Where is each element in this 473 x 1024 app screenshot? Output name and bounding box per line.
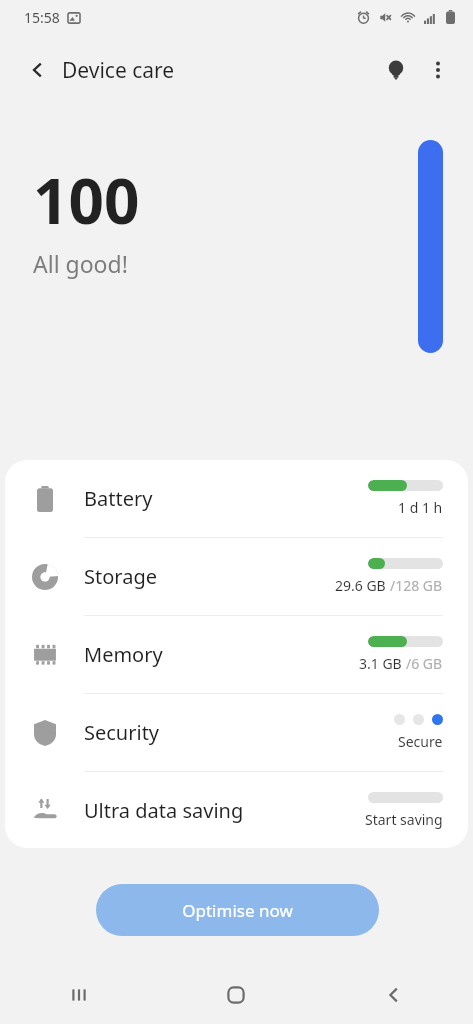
button[interactable]: Recents — [0, 966, 157, 1024]
staticText: Optimise now — [182, 899, 293, 922]
staticText: 29.6 GB — [335, 576, 390, 595]
button[interactable]: Back — [315, 966, 473, 1024]
button[interactable]: Home — [157, 966, 315, 1024]
staticText: 1 d 1 h — [398, 498, 443, 517]
button[interactable]: Tips — [375, 49, 417, 91]
button[interactable]: Ultra data saving — [5, 772, 468, 848]
button[interactable]: More options — [417, 49, 459, 91]
staticText: 15:58 — [24, 8, 60, 27]
button[interactable]: Security — [5, 694, 468, 771]
staticText: Memory — [84, 641, 359, 668]
button[interactable]: Back — [18, 50, 58, 90]
button[interactable]: Memory — [5, 616, 468, 693]
staticText: Secure — [398, 732, 443, 751]
staticText: Battery — [84, 485, 368, 512]
staticText: Security — [84, 719, 394, 746]
staticText: Storage — [84, 563, 335, 590]
staticText: 100 — [33, 158, 140, 242]
staticText: /128 GB — [390, 576, 443, 595]
button[interactable]: Battery — [5, 460, 468, 537]
button[interactable]: Storage — [5, 538, 468, 615]
staticText: 3.1 GB — [359, 654, 406, 673]
staticText: Ultra data saving — [84, 797, 365, 824]
staticText: All good! — [33, 248, 128, 279]
staticText: Start saving — [365, 810, 443, 829]
button[interactable]: Optimise now — [96, 884, 379, 936]
staticText: Device care — [62, 56, 175, 85]
staticText: /6 GB — [406, 654, 443, 673]
